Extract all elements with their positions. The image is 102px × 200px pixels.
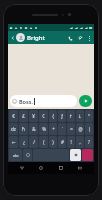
button[interactable]: ← [9,136,18,148]
staticText: Bright [27,34,65,42]
staticText: ! [70,139,72,145]
staticText: ↓ [78,114,82,119]
button[interactable]: Attach [75,33,85,43]
button[interactable]: abc [9,149,22,161]
button[interactable]: Back [9,34,16,41]
staticText: ƒ [61,113,63,119]
button[interactable]: + [49,123,57,135]
button[interactable]: | [85,123,93,135]
staticText: ← [12,140,16,145]
staticText: ° [88,113,90,119]
button[interactable]: Recents [56,163,66,173]
button[interactable]: ↓ [76,110,84,122]
button[interactable]: ¿ [19,136,28,148]
button[interactable]: ƒ [58,110,66,122]
button[interactable]: ¢ [39,110,48,122]
staticText: & [32,126,36,132]
button[interactable]: £ [19,110,28,122]
button[interactable]: Home [36,163,46,173]
button[interactable]: € [9,110,18,122]
button[interactable]: , [76,136,84,148]
staticText: € [12,113,15,119]
button[interactable]: / [29,136,38,148]
button[interactable]: Emoji [23,149,32,161]
button[interactable]: Settings [70,149,81,161]
button[interactable]: { [49,110,57,122]
staticText: # [61,139,64,145]
button[interactable]: ħ [19,123,28,135]
staticText: / [33,139,35,145]
staticText: abc [13,153,19,158]
staticText: ) [52,139,54,145]
button[interactable]: ) [49,136,57,148]
staticText: ( [43,139,45,145]
button[interactable]: & [29,123,38,135]
staticText: + [52,126,55,132]
button[interactable]: Keyboard [75,163,85,173]
button[interactable]: ( [39,136,48,148]
button[interactable]: Contact avatar [16,33,25,42]
button[interactable]: ↑ [67,110,75,122]
staticText: dz [11,126,16,132]
button[interactable]: ° [85,110,93,122]
staticText: @ [78,126,83,132]
staticText: ↑ [69,114,73,119]
button[interactable]: Call [65,33,75,43]
button[interactable]: ¥ [29,110,38,122]
staticText: £ [22,113,25,119]
staticText: ħ [22,126,25,132]
staticText: % [42,126,46,132]
button[interactable]: Boss. [10,95,77,107]
staticText: ¢ [42,113,45,119]
button[interactable]: = [67,123,75,135]
button[interactable]: @ [76,123,84,135]
staticText: ˙ [62,126,63,132]
button[interactable]: Enter [82,149,93,161]
button[interactable]: More options [85,34,93,42]
button[interactable]: # [58,136,66,148]
button[interactable]: ! [67,136,75,148]
staticText: ¿ [23,139,25,145]
staticText: { [52,113,54,119]
staticText: , [79,139,81,145]
button[interactable]: % [39,123,48,135]
staticText: | [88,126,91,132]
staticText: = [70,126,73,132]
button[interactable]: dz [9,123,18,135]
button[interactable]: ? [85,136,93,148]
button[interactable]: ˙ [58,123,66,135]
staticText: ¥ [32,113,35,119]
staticText: ? [88,139,90,145]
button[interactable]: Back [17,163,27,173]
staticText: Boss. [19,98,33,105]
button[interactable]: Send [79,95,92,107]
